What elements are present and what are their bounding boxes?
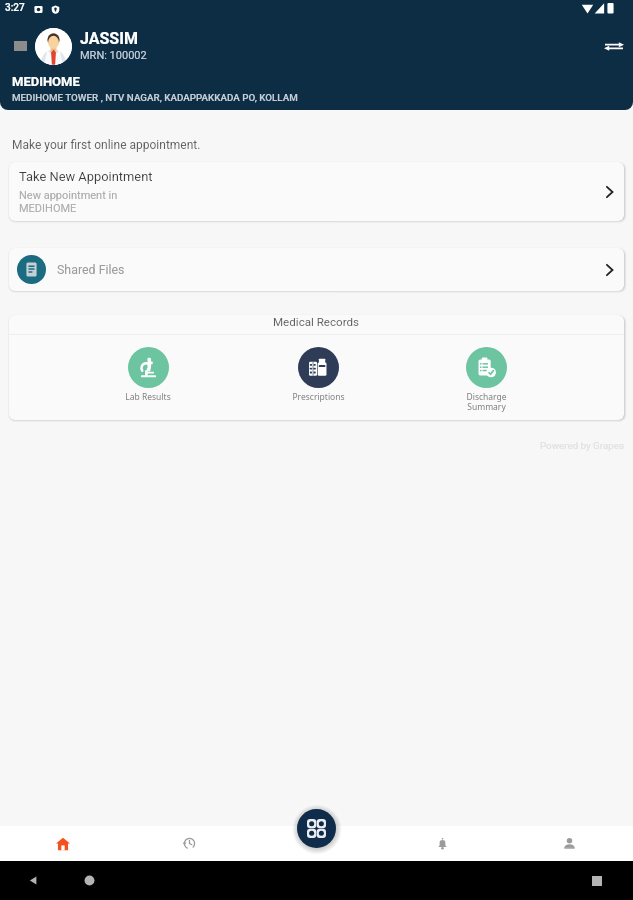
- staticText: Make your first online appointment.: [12, 138, 201, 152]
- staticText: Prescriptions: [292, 391, 345, 403]
- button[interactable]: Menu: [10, 36, 30, 56]
- staticText: MEDIHOME TOWER , NTV NAGAR, KADAPPAKKADA…: [12, 92, 298, 103]
- button[interactable]: Shared Files: [9, 248, 624, 291]
- button[interactable]: Prescriptions: [261, 347, 375, 403]
- button[interactable]: Profile: [506, 826, 633, 861]
- button[interactable]: Home: [0, 826, 126, 861]
- staticText: MEDIHOME: [12, 74, 80, 89]
- staticText: JASSIM: [80, 29, 138, 48]
- staticText: Shared Files: [57, 262, 603, 277]
- staticText: Lab Results: [125, 391, 171, 403]
- button[interactable]: Switch hospital: [601, 33, 627, 59]
- button[interactable]: Discharge Summary: [429, 347, 543, 413]
- button[interactable]: Notifications: [379, 826, 506, 861]
- staticText: Take New Appointment: [19, 169, 153, 184]
- staticText: Medical Records: [273, 315, 360, 329]
- staticText: Powered by Grapes: [0, 440, 624, 451]
- staticText: Discharge Summary: [466, 391, 507, 413]
- button[interactable]: History: [126, 826, 252, 861]
- staticText: New appointment in MEDIHOME: [19, 189, 118, 215]
- staticText: 3:27: [5, 2, 25, 14]
- button[interactable]: Lab Results: [91, 347, 205, 403]
- staticText: MRN: 100002: [80, 49, 147, 62]
- button[interactable]: All services: [297, 809, 336, 848]
- button[interactable]: Take New Appointment: [9, 162, 624, 221]
- button[interactable]: Profile photo: [35, 28, 72, 65]
